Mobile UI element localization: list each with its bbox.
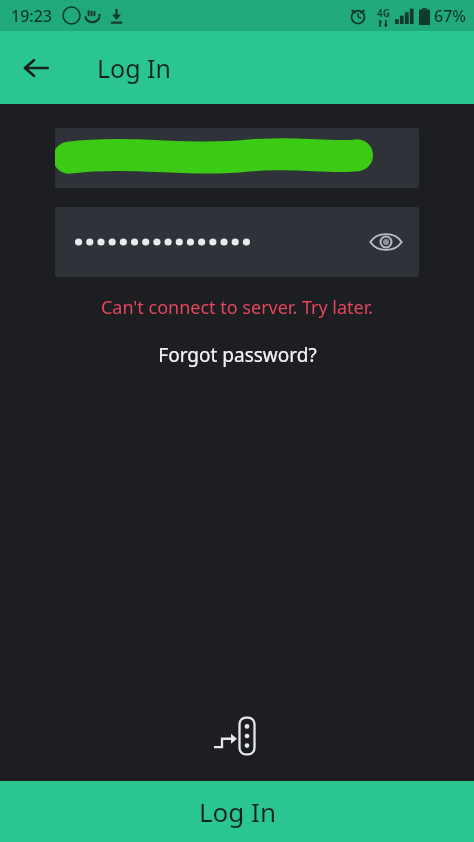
staticText: Forgot password? [158,342,317,368]
button[interactable]: Show password [55,207,419,277]
staticText: Log In [97,51,172,85]
button[interactable]: Back [12,44,60,92]
staticText: Log In [199,794,276,829]
button[interactable]: Forgot password? [148,338,327,372]
staticText: Can't connect to server. Try later. [0,295,474,320]
staticText: 19:23 [11,5,52,27]
button[interactable] [55,128,419,188]
button[interactable]: Show password [363,219,409,265]
staticText: 67% [434,5,466,27]
button[interactable]: Log In [0,781,474,842]
staticText: 4G [377,6,390,20]
button[interactable]: Switch input method [205,708,269,764]
